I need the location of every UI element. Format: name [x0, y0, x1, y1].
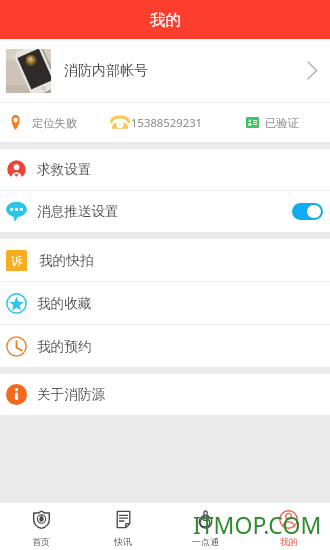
button[interactable]: 消息推送设置开关	[292, 203, 323, 220]
staticText: 关于消防源	[37, 386, 105, 403]
staticText: 我的收藏	[37, 295, 92, 312]
staticText: 已验证	[265, 116, 299, 130]
staticText: ITMOP.COM	[193, 509, 322, 540]
staticText: 求救设置	[37, 161, 92, 178]
staticText: 消防内部帐号	[64, 62, 148, 80]
staticText: 首页	[32, 536, 50, 547]
staticText: 定位失败	[32, 116, 78, 130]
button[interactable]: 我的	[247, 503, 330, 550]
button[interactable]: 我的预约	[0, 325, 330, 367]
button[interactable]: 消息推送设置	[0, 191, 330, 232]
button[interactable]: 快讯	[82, 503, 164, 550]
button[interactable]: 我的收藏	[0, 282, 330, 324]
staticText: 我的	[150, 10, 181, 30]
staticText: 我的预约	[37, 338, 92, 355]
button[interactable]: 首页	[0, 503, 82, 550]
staticText: 我的	[280, 536, 298, 547]
staticText: 一点通	[192, 536, 219, 547]
button[interactable]: 关于消防源	[0, 374, 330, 415]
button[interactable]: 一点通	[164, 503, 247, 550]
staticText: 诉	[11, 254, 22, 268]
staticText: 快讯	[114, 536, 132, 547]
staticText: 我的快拍	[39, 252, 94, 269]
button[interactable]: 消防内部帐号	[0, 39, 330, 102]
staticText: 15388529231	[131, 115, 203, 130]
button[interactable]: 求救设置	[0, 149, 330, 190]
staticText: 消息推送设置	[37, 203, 119, 220]
button[interactable]: 诉	[0, 239, 330, 281]
